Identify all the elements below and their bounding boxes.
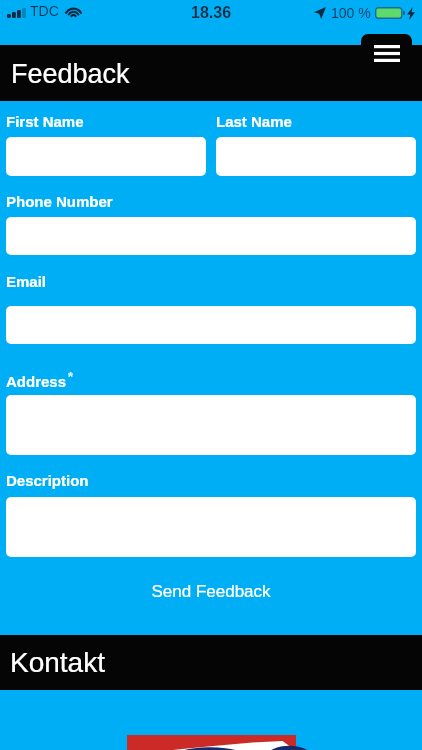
staticText: Phone Number (6, 193, 113, 210)
staticText: Description (6, 472, 89, 489)
button[interactable]: Kontakt (0, 635, 422, 690)
button[interactable] (6, 217, 416, 255)
button[interactable]: Menu (361, 34, 412, 76)
staticText: First Name (6, 113, 84, 130)
staticText: Email (6, 273, 47, 290)
staticText: TDC (30, 3, 59, 19)
button[interactable] (6, 137, 206, 176)
staticText: Send Feedback (151, 582, 271, 601)
button[interactable] (6, 306, 416, 344)
staticText: Last Name (216, 113, 292, 130)
staticText: Feedback (11, 59, 130, 89)
button[interactable]: Send Feedback (0, 570, 422, 612)
button[interactable] (216, 137, 416, 176)
staticText: Address (6, 373, 67, 390)
button[interactable] (6, 497, 416, 557)
staticText: Kontakt (10, 647, 105, 678)
staticText: 18.36 (191, 4, 232, 22)
button[interactable] (6, 395, 416, 455)
staticText: 100 % (331, 5, 371, 21)
staticText: * (68, 369, 74, 384)
